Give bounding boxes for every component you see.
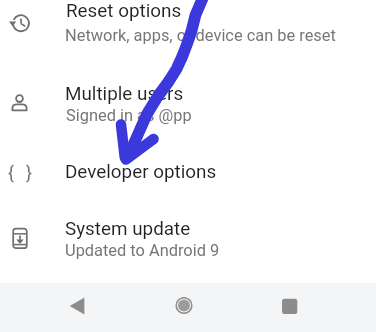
staticText: Signed in as @pp	[66, 106, 192, 125]
button[interactable]: Developer options	[0, 146, 376, 198]
staticText: Network, apps, or device can be reset	[65, 26, 336, 45]
button[interactable]	[57, 289, 93, 325]
staticText: Reset options	[66, 0, 182, 22]
staticText: Developer options	[65, 161, 217, 183]
button[interactable]	[166, 288, 202, 324]
staticText: System update	[65, 218, 191, 240]
button[interactable]: Multiple users	[0, 64, 376, 138]
button[interactable]: System update	[0, 204, 376, 276]
staticText: Updated to Android 9	[65, 241, 220, 260]
staticText: }	[26, 163, 32, 184]
button[interactable]	[271, 288, 307, 324]
staticText: Multiple users	[65, 83, 184, 105]
button[interactable]: Reset options	[0, 0, 376, 48]
staticText: {	[8, 163, 14, 184]
